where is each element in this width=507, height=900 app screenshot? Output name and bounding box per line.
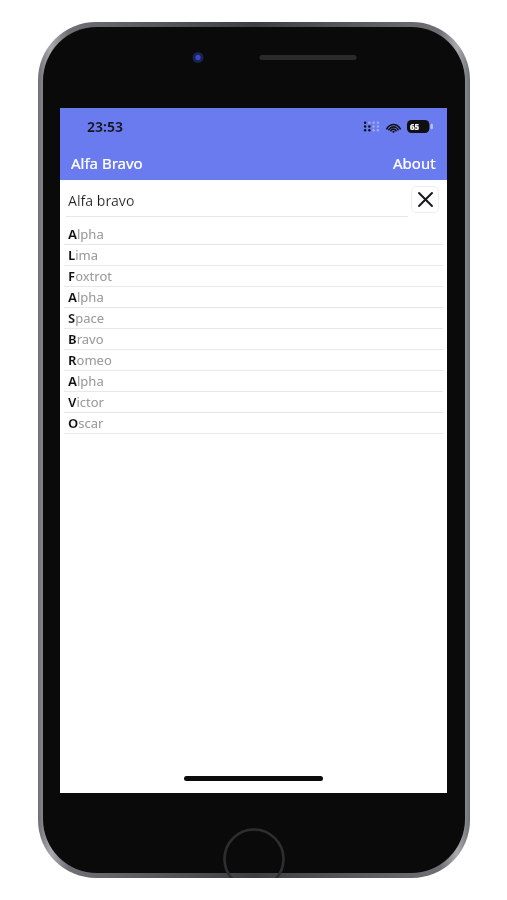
staticText: Victor (68, 393, 104, 411)
staticText: Oscar (68, 414, 104, 432)
button[interactable]: Oscar (60, 413, 447, 434)
button[interactable]: About (382, 147, 447, 179)
staticText: Alpha (68, 372, 104, 390)
button[interactable]: Victor (60, 392, 447, 413)
button[interactable]: Foxtrot (60, 266, 447, 287)
button[interactable]: Romeo (60, 350, 447, 371)
staticText: Alfa Bravo (71, 153, 143, 173)
staticText: Alpha (68, 225, 104, 243)
staticText: Bravo (68, 330, 104, 348)
button[interactable]: Alpha (60, 287, 447, 308)
staticText: 65 (410, 121, 420, 132)
button[interactable]: Bravo (60, 329, 447, 350)
staticText: Lima (68, 246, 99, 264)
staticText: About (393, 153, 436, 173)
staticText: Foxtrot (68, 267, 112, 285)
button[interactable]: Lima (60, 245, 447, 266)
staticText: Romeo (68, 351, 112, 369)
staticText: 23:53 (87, 117, 123, 136)
button[interactable]: Clear search (411, 186, 439, 213)
staticText: Space (68, 309, 105, 327)
staticText: Alpha (68, 288, 104, 306)
button[interactable]: Space (60, 308, 447, 329)
button[interactable]: Alpha (60, 371, 447, 392)
button[interactable]: Alpha (60, 224, 447, 245)
staticText: Alfa bravo (68, 191, 135, 210)
